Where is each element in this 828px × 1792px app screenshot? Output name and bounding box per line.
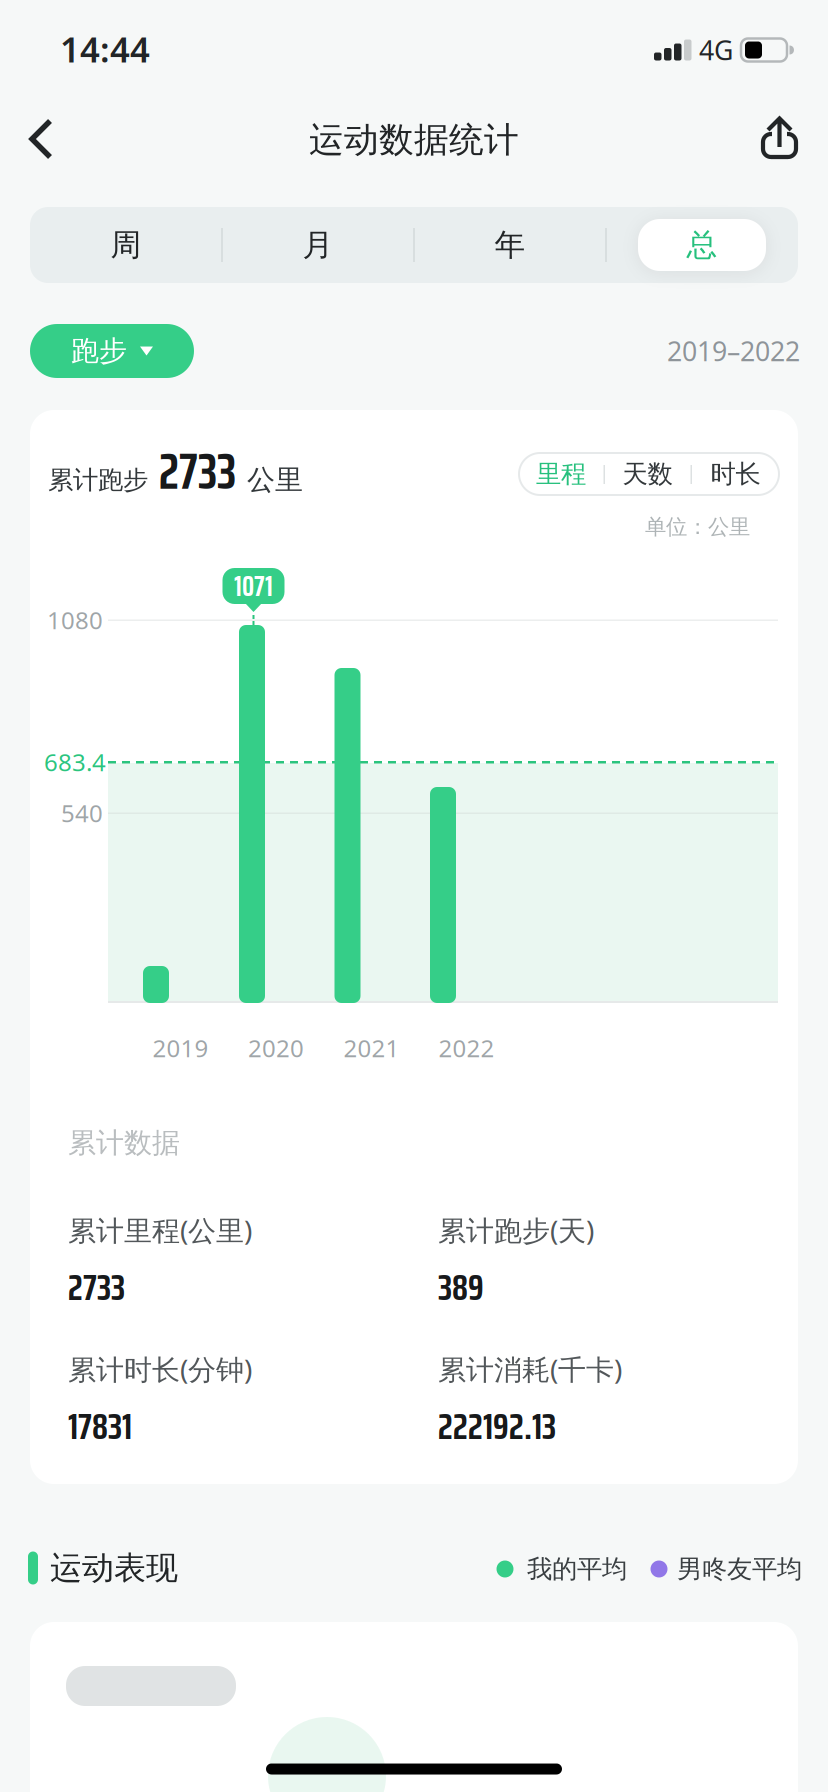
staticText: 683.4 <box>44 746 106 778</box>
staticText: 总 <box>686 226 717 264</box>
staticText: 17831 <box>68 1397 132 1455</box>
staticText: 累计时长(分钟) <box>68 1350 252 1388</box>
staticText: 2733 <box>68 1258 125 1316</box>
staticText: 累计里程(公里) <box>68 1211 252 1249</box>
staticText: 2022 <box>438 1032 494 1064</box>
staticText: 单位：公里 <box>645 514 750 540</box>
staticText: 1080 <box>47 604 103 636</box>
staticText: 公里 <box>247 463 303 497</box>
staticText: 222192.13 <box>438 1397 556 1455</box>
staticText: 2021 <box>343 1032 399 1064</box>
staticText: 运动表现 <box>50 1548 178 1588</box>
staticText: 2019–2022 <box>667 333 800 369</box>
staticText: 累计跑步(天) <box>438 1211 594 1249</box>
staticText: 周 <box>110 226 141 264</box>
button[interactable]: 天数 <box>605 452 689 496</box>
button[interactable]: 时长 <box>693 452 777 496</box>
button[interactable]: 年 <box>415 207 605 283</box>
staticText: 1071 <box>234 563 273 608</box>
staticText: 天数 <box>622 458 672 489</box>
button[interactable]: 总 <box>607 207 797 283</box>
button[interactable]: 跑步 <box>30 324 194 378</box>
button[interactable]: 周 <box>31 207 221 283</box>
staticText: 里程 <box>536 458 586 489</box>
button[interactable]: 月 <box>223 207 413 283</box>
staticText: 2019 <box>152 1032 208 1064</box>
staticText: 跑步 <box>71 334 127 368</box>
staticText: 年 <box>494 226 525 264</box>
staticText: 累计跑步 <box>48 464 148 495</box>
staticText: 14:44 <box>60 26 150 72</box>
staticText: 累计消耗(千卡) <box>438 1350 622 1388</box>
staticText: 我的平均 <box>527 1553 627 1584</box>
staticText: 运动数据统计 <box>309 119 519 161</box>
staticText: 389 <box>438 1258 484 1316</box>
staticText: 540 <box>61 797 103 829</box>
staticText: 4G <box>699 32 733 68</box>
staticText: 男咚友平均 <box>677 1553 802 1584</box>
staticText: 2020 <box>248 1032 304 1064</box>
button[interactable]: 里程 <box>519 452 603 496</box>
button[interactable] <box>758 117 802 161</box>
staticText: 2733 <box>159 431 236 511</box>
staticText: 累计数据 <box>68 1126 180 1160</box>
button[interactable] <box>14 118 74 160</box>
staticText: 时长 <box>710 458 760 489</box>
staticText: 月 <box>302 226 333 264</box>
